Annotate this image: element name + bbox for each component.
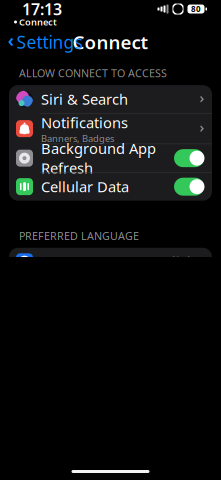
staticText: Cellular Data xyxy=(41,177,129,196)
button[interactable]: Settings xyxy=(0,24,82,59)
staticText: Language xyxy=(41,252,109,272)
staticText: English xyxy=(146,252,196,272)
button[interactable]: Siri & Search xyxy=(9,85,212,113)
staticText: Banners, Badges xyxy=(41,132,114,145)
button[interactable]: Cellular Data xyxy=(9,173,212,201)
staticText: PREFERRED LANGUAGE xyxy=(19,229,139,243)
staticText: Connect xyxy=(19,16,57,28)
staticText: Siri & Search xyxy=(41,89,128,109)
button[interactable]: Language xyxy=(9,248,212,276)
button[interactable]: Background App Refresh xyxy=(9,144,212,172)
staticText: Notifications xyxy=(41,113,128,132)
staticText: 17:13 xyxy=(22,0,62,20)
staticText: Connect xyxy=(72,30,148,54)
staticText: Background App Refresh xyxy=(41,139,156,178)
staticText: 80 xyxy=(191,4,201,14)
staticText: Settings xyxy=(16,30,82,53)
button[interactable]: Notifications xyxy=(9,114,212,144)
staticText: ALLOW CONNECT TO ACCESS xyxy=(19,66,167,80)
